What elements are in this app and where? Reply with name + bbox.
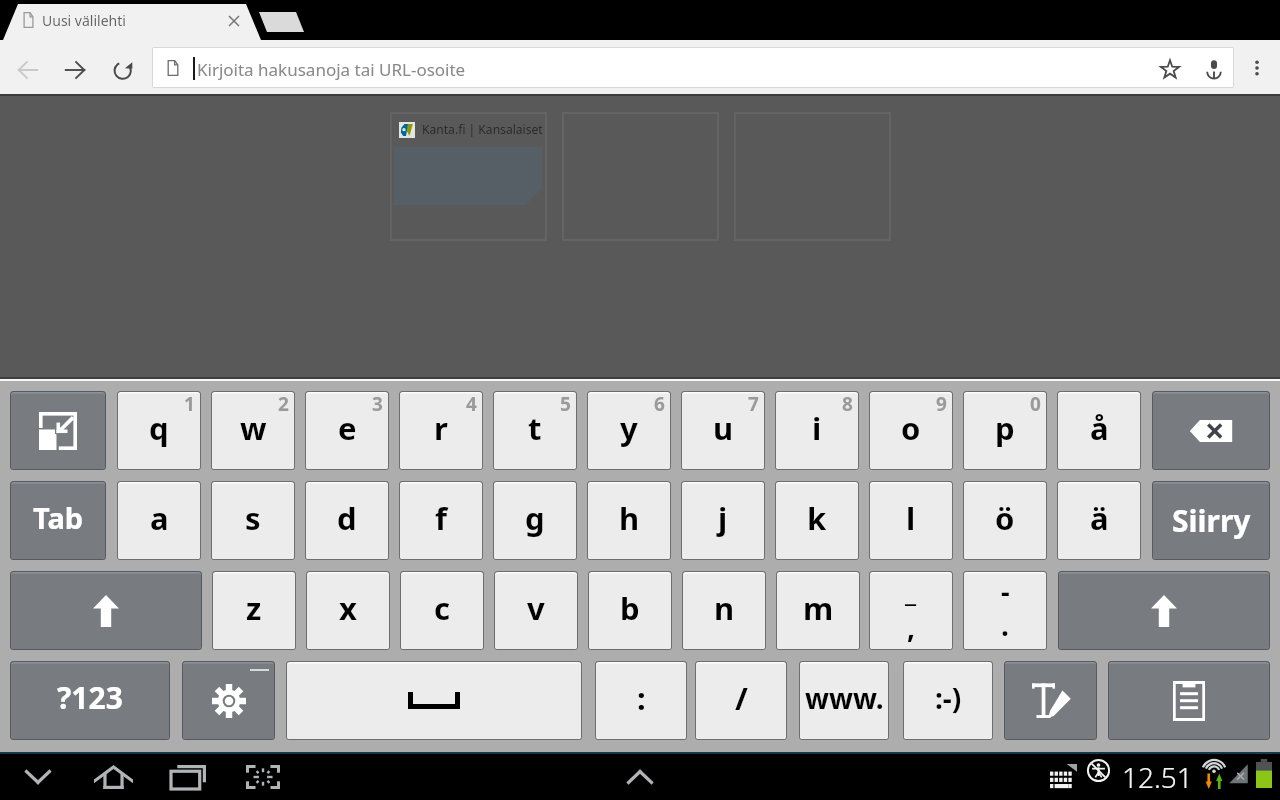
staticText: å <box>1090 407 1109 449</box>
button[interactable]: More options <box>1243 54 1271 82</box>
button[interactable]: n <box>682 571 766 650</box>
button[interactable]: c <box>400 571 484 650</box>
button[interactable]: d <box>305 481 389 560</box>
staticText: v <box>527 587 545 629</box>
button[interactable]: t <box>493 391 577 470</box>
staticText: l <box>906 497 916 539</box>
staticText: 4 <box>466 391 477 417</box>
staticText: 12.51 <box>1122 758 1193 796</box>
staticText: g <box>525 497 545 539</box>
staticText: 3 <box>372 391 383 417</box>
button[interactable]: Accessibility off <box>1084 758 1112 786</box>
button[interactable]: i <box>775 391 859 470</box>
button[interactable]: ä <box>1057 481 1141 560</box>
button[interactable]: v <box>494 571 578 650</box>
button[interactable]: . <box>963 571 1047 650</box>
staticText: r <box>434 407 448 449</box>
button[interactable]: r <box>399 391 483 470</box>
button[interactable]: Backspace <box>1152 391 1270 470</box>
button[interactable]: Expand <box>614 753 666 800</box>
staticText: s <box>245 497 261 539</box>
staticText: d <box>337 497 357 539</box>
button[interactable]: k <box>775 481 859 560</box>
staticText: 2 <box>278 391 289 417</box>
button[interactable]: Keyboard <box>1046 760 1080 792</box>
button[interactable]: s <box>211 481 295 560</box>
button[interactable]: Space <box>286 661 582 740</box>
button[interactable]: Handwriting <box>1004 661 1097 740</box>
staticText: , <box>907 608 915 646</box>
button[interactable]: a <box>117 481 201 560</box>
staticText: b <box>620 587 640 629</box>
button[interactable]: Voice search <box>1199 54 1229 84</box>
staticText: u <box>713 407 734 449</box>
staticText: j <box>718 497 728 539</box>
button[interactable]: g <box>493 481 577 560</box>
button[interactable]: e <box>305 391 389 470</box>
button[interactable]: z <box>212 571 296 650</box>
button[interactable]: :-) <box>903 661 993 740</box>
button[interactable]: Hide keyboard <box>10 391 106 470</box>
staticText: : <box>637 677 646 719</box>
button[interactable]: y <box>587 391 671 470</box>
button[interactable]: Siirry <box>1152 481 1270 560</box>
button[interactable]: ö <box>963 481 1047 560</box>
button[interactable]: Reload <box>104 58 144 82</box>
button[interactable]: b <box>588 571 672 650</box>
button[interactable]: q <box>117 391 201 470</box>
button[interactable]: p <box>963 391 1047 470</box>
button[interactable]: Home <box>87 753 139 800</box>
button[interactable]: l <box>869 481 953 560</box>
button[interactable]: å <box>1057 391 1141 470</box>
staticText: :-) <box>935 679 962 717</box>
staticText: m <box>803 587 834 629</box>
button[interactable]: Back <box>8 58 48 82</box>
button[interactable]: u <box>681 391 765 470</box>
staticText: o <box>901 407 921 449</box>
staticText: 9 <box>936 391 947 417</box>
staticText: 1 <box>184 391 195 417</box>
button[interactable]: w <box>211 391 295 470</box>
button[interactable]: Forward <box>55 58 95 82</box>
button[interactable]: Shift <box>1058 571 1270 650</box>
staticText: ä <box>1090 497 1109 539</box>
button[interactable]: Screenshot <box>237 753 289 800</box>
staticText: c <box>434 587 450 629</box>
button[interactable]: f <box>399 481 483 560</box>
button[interactable]: Kirjoita hakusanoja tai URL-osoite <box>153 48 1233 87</box>
button[interactable]: , <box>869 571 953 650</box>
staticText: 8 <box>842 391 853 417</box>
button[interactable]: ?123 <box>10 661 170 740</box>
button[interactable]: j <box>681 481 765 560</box>
button[interactable]: Hide keyboard <box>12 753 64 800</box>
staticText: 6 <box>654 391 665 417</box>
staticText: ?123 <box>57 677 123 718</box>
staticText: Tab <box>33 498 84 537</box>
button[interactable]: Kanta.fi | Kansalaiset <box>391 113 546 240</box>
staticText: e <box>338 407 357 449</box>
staticText: f <box>435 497 447 539</box>
button[interactable]: New tab <box>257 8 307 36</box>
staticText: / <box>735 677 748 719</box>
button[interactable]: Shift <box>10 571 202 650</box>
button[interactable]: Bookmark <box>1155 54 1185 84</box>
button[interactable]: m <box>776 571 860 650</box>
staticText: p <box>995 407 1015 449</box>
button[interactable]: x <box>306 571 390 650</box>
staticText: www. <box>805 679 884 717</box>
button[interactable]: h <box>587 481 671 560</box>
staticText: h <box>619 497 640 539</box>
button[interactable]: Recents <box>162 753 214 800</box>
button[interactable]: / <box>695 661 787 740</box>
staticText: k <box>807 497 827 539</box>
button[interactable]: Tab <box>10 481 106 560</box>
button[interactable]: Close tab <box>223 10 244 31</box>
button[interactable]: www. <box>799 661 889 740</box>
button[interactable]: : <box>595 661 687 740</box>
button[interactable]: Clipboard <box>1108 661 1270 740</box>
button[interactable]: o <box>869 391 953 470</box>
button[interactable]: Settings <box>182 661 275 740</box>
staticText: n <box>714 587 735 629</box>
